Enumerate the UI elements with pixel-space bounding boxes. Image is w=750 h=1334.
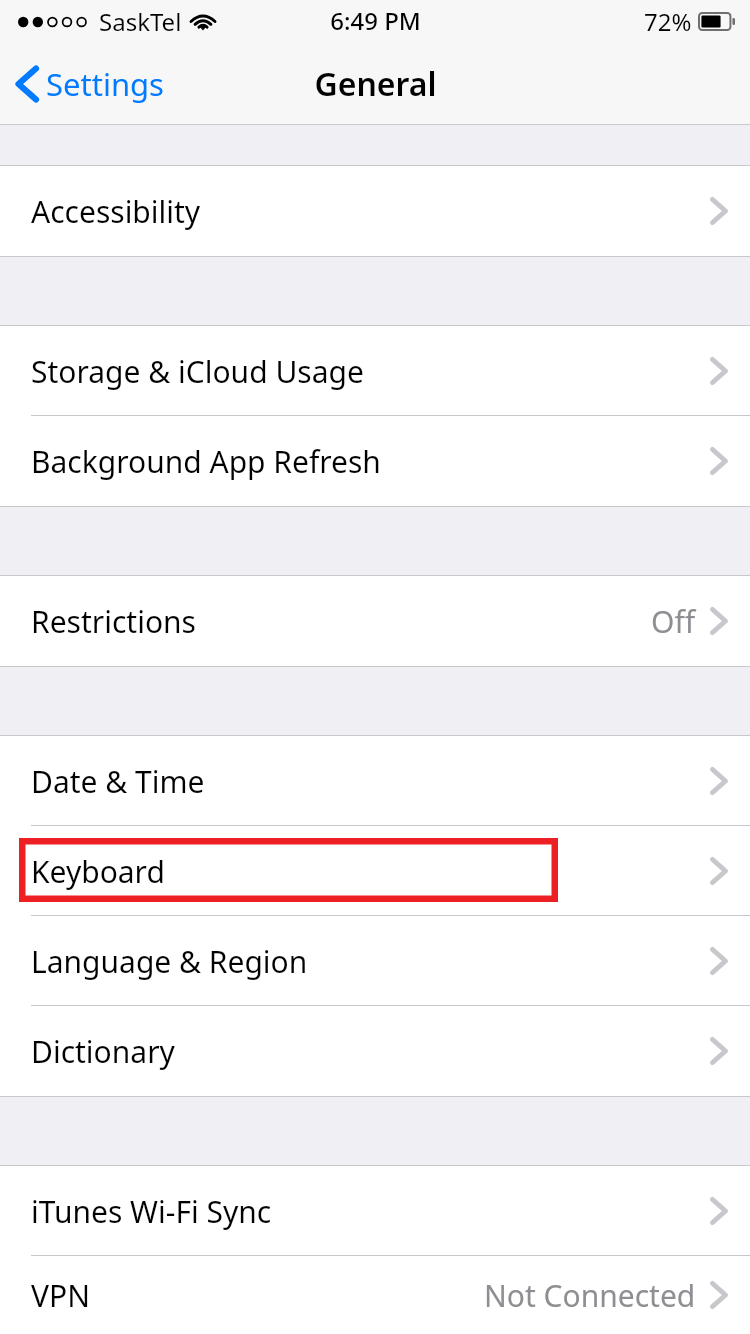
other: Open: [710, 857, 728, 885]
staticText: Accessibility: [31, 191, 201, 232]
other: Open: [710, 357, 728, 385]
staticText: 6:49 PM: [330, 4, 421, 37]
staticText: General: [314, 62, 437, 106]
staticText: Background App Refresh: [31, 441, 381, 482]
other: Open: [710, 447, 728, 475]
staticText: 72%: [644, 5, 692, 38]
button[interactable]: Settings: [0, 55, 178, 113]
button[interactable]: Dictionary: [0, 1006, 750, 1096]
button[interactable]: Restrictions: [0, 576, 750, 666]
staticText: Restrictions: [31, 601, 196, 642]
button[interactable]: Accessibility: [0, 166, 750, 256]
staticText: Storage & iCloud Usage: [31, 351, 364, 392]
staticText: Settings: [46, 63, 164, 105]
other: Open: [710, 607, 728, 635]
other: Open: [710, 1197, 728, 1225]
other: Open: [710, 197, 728, 225]
staticText: Dictionary: [31, 1031, 175, 1072]
staticText: Off: [651, 601, 696, 642]
button[interactable]: VPN: [0, 1256, 750, 1334]
button[interactable]: Language & Region: [0, 916, 750, 1006]
button[interactable]: Date & Time: [0, 736, 750, 826]
staticText: SaskTel: [99, 5, 182, 38]
staticText: Keyboard: [31, 851, 165, 892]
staticText: Language & Region: [31, 941, 308, 982]
staticText: Date & Time: [31, 761, 205, 802]
button[interactable]: Storage & iCloud Usage: [0, 326, 750, 416]
button[interactable]: Background App Refresh: [0, 416, 750, 506]
other: Open: [710, 1037, 728, 1065]
other: Open: [710, 1281, 728, 1309]
other: Open: [710, 767, 728, 795]
staticText: VPN: [31, 1275, 90, 1316]
other: Open: [710, 947, 728, 975]
button[interactable]: Keyboard: [0, 826, 750, 916]
staticText: Not Connected: [484, 1275, 696, 1316]
button[interactable]: iTunes Wi-Fi Sync: [0, 1166, 750, 1256]
staticText: iTunes Wi-Fi Sync: [31, 1191, 272, 1232]
